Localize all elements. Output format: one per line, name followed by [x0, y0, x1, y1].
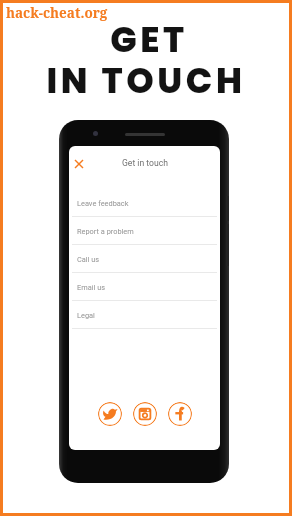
- button[interactable]: Twitter: [98, 402, 122, 426]
- button[interactable]: Close: [70, 155, 88, 173]
- button[interactable]: Legal: [69, 301, 220, 329]
- staticText: IN TOUCH: [46, 56, 246, 105]
- staticText: GET: [110, 15, 188, 64]
- staticText: Get in touch: [122, 158, 168, 168]
- staticText: Call us: [77, 255, 100, 264]
- button[interactable]: Instagram: [133, 402, 157, 426]
- button[interactable]: Email us: [69, 273, 220, 301]
- button[interactable]: Report a problem: [69, 217, 220, 245]
- staticText: Report a problem: [77, 227, 134, 236]
- staticText: Legal: [77, 311, 95, 320]
- button[interactable]: Call us: [69, 245, 220, 273]
- staticText: Leave feedback: [77, 199, 129, 208]
- button[interactable]: Leave feedback: [69, 189, 220, 217]
- button[interactable]: Facebook: [168, 402, 192, 426]
- staticText: Email us: [77, 283, 106, 292]
- staticText: hack-cheat.org: [6, 4, 108, 22]
